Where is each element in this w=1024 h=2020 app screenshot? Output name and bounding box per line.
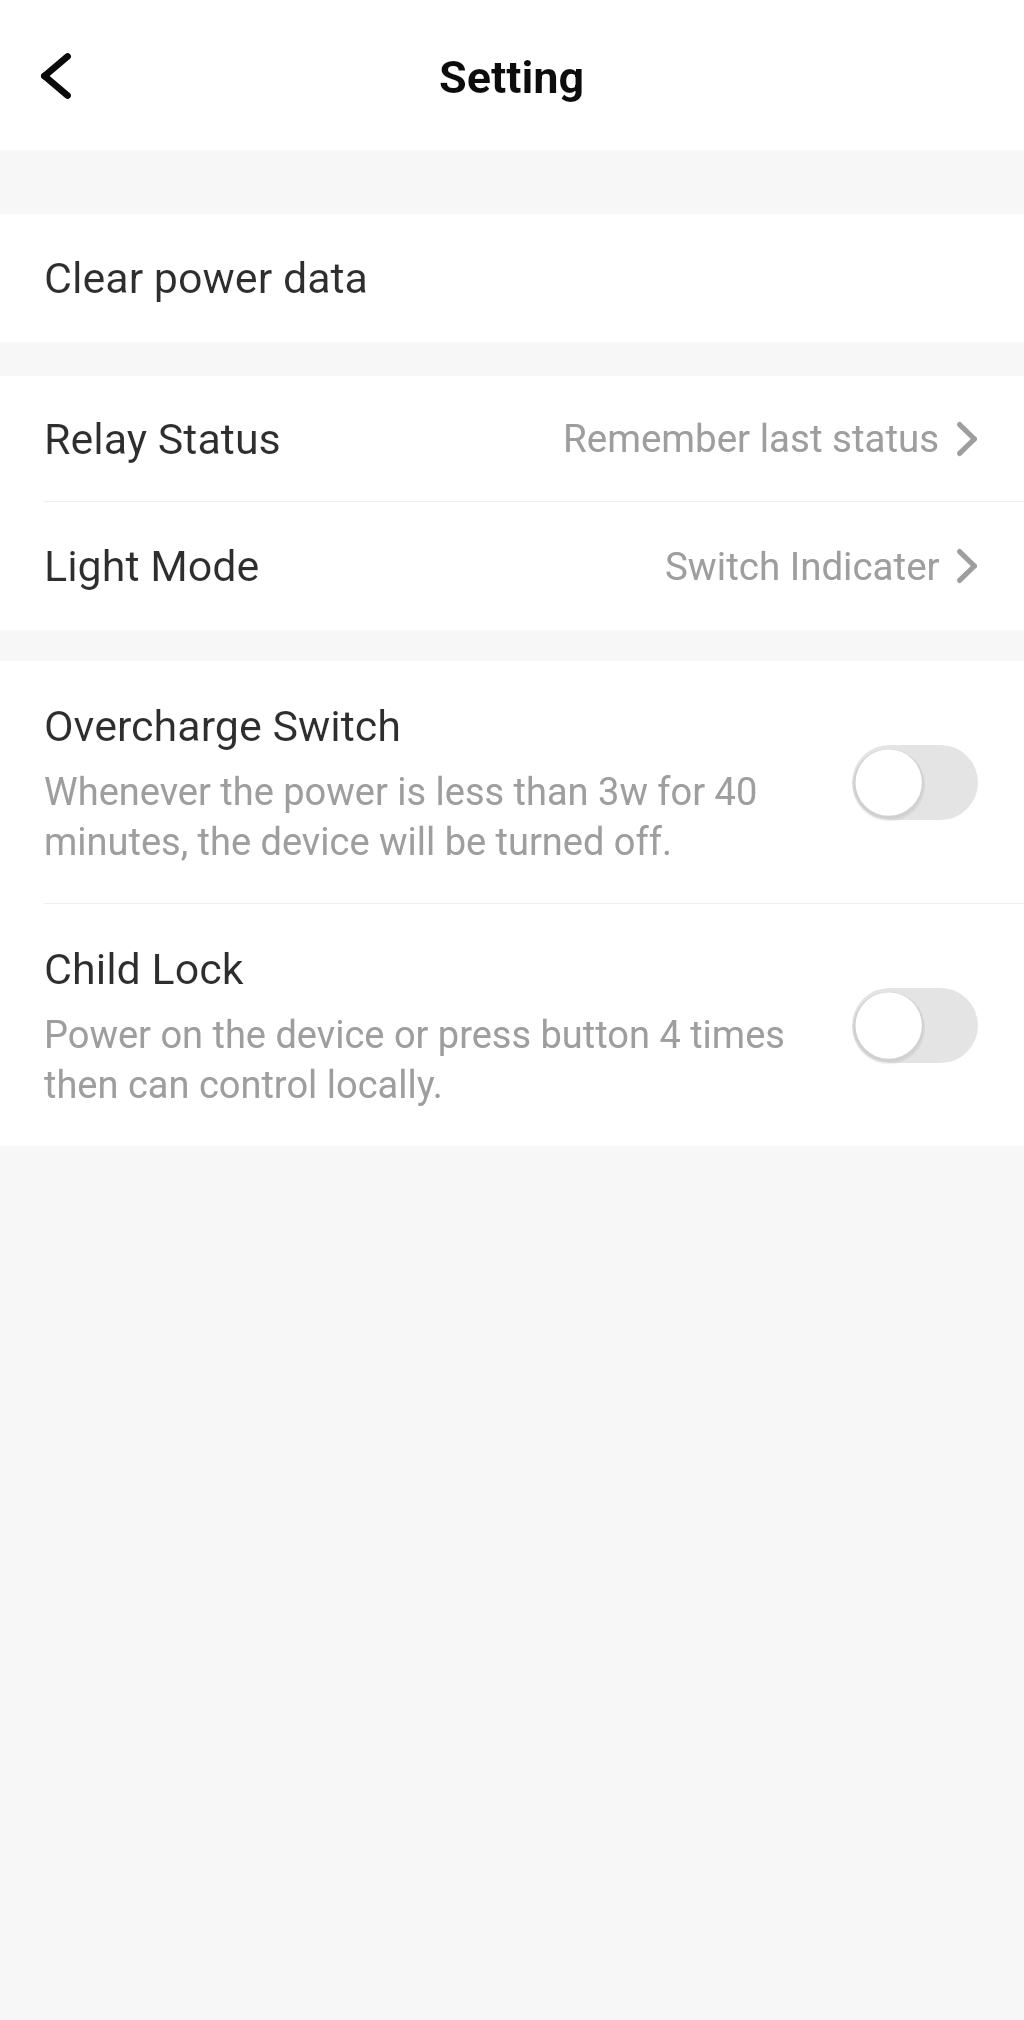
staticText: Switch Indicater [665, 544, 940, 589]
staticText: Whenever the power is less than 3w for 4… [44, 770, 806, 864]
staticText: Overcharge Switch [44, 701, 402, 751]
button[interactable]: Relay Status [0, 376, 1024, 501]
staticText: Child Lock [44, 944, 244, 994]
staticText: Relay Status [44, 414, 281, 464]
button[interactable]: Clear power data [0, 214, 1024, 342]
button[interactable]: Light Mode [0, 502, 1024, 630]
staticText: Light Mode [44, 541, 260, 591]
button[interactable]: Back [14, 35, 94, 115]
staticText: Remember last status [563, 416, 940, 461]
button[interactable]: Toggle Child Lock [852, 988, 978, 1063]
staticText: Setting [439, 51, 585, 104]
staticText: Clear power data [44, 253, 368, 303]
staticText: Power on the device or press button 4 ti… [44, 1013, 806, 1107]
button[interactable]: Toggle Overcharge Switch [852, 745, 978, 820]
